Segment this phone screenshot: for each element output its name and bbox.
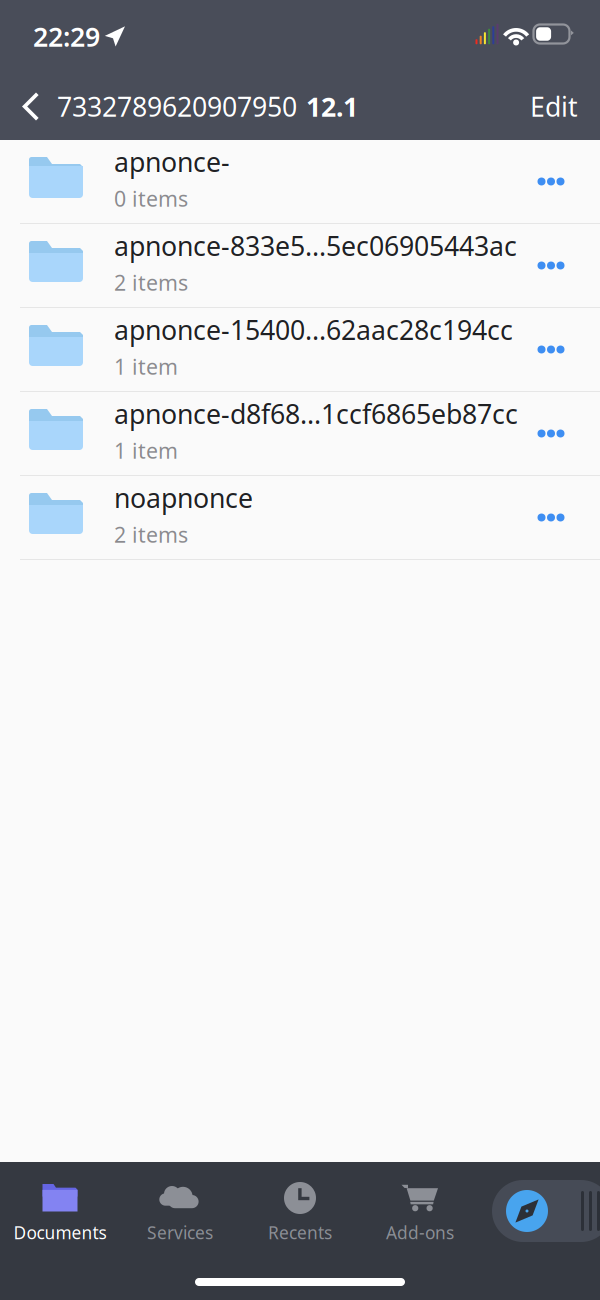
button[interactable]: noapnonce <box>0 476 600 559</box>
button[interactable]: Recents <box>240 1162 360 1300</box>
staticText: Documents <box>13 1221 106 1244</box>
staticText: apnonce-15400...62aac28c194cc <box>114 312 513 347</box>
button[interactable]: apnonce-d8f68...1ccf6865eb87cc <box>0 392 600 475</box>
button[interactable]: apnonce- <box>0 140 600 223</box>
button[interactable]: apnonce-833e5...5ec06905443ac <box>0 224 600 307</box>
staticText: apnonce- <box>114 144 230 179</box>
staticText: Recents <box>268 1221 332 1244</box>
button[interactable]: More options for apnonce-833e5...5ec0690… <box>520 224 600 307</box>
staticText: 2 items <box>114 268 188 297</box>
staticText: 22:29 <box>33 19 100 54</box>
button[interactable]: Documents <box>0 1162 120 1300</box>
staticText: apnonce-833e5...5ec06905443ac <box>114 228 517 263</box>
button[interactable]: Edit <box>530 77 600 136</box>
button[interactable]: More options for apnonce- <box>520 140 600 223</box>
staticText: 1 item <box>114 352 178 381</box>
button[interactable]: Services <box>120 1162 240 1300</box>
staticText: 12.1 <box>306 89 358 124</box>
staticText: 0 items <box>114 184 188 213</box>
button[interactable]: 7332789620907950 <box>0 77 358 136</box>
staticText: 2 items <box>114 520 188 549</box>
staticText: 1 item <box>114 436 178 465</box>
button[interactable]: apnonce-15400...62aac28c194cc <box>0 308 600 391</box>
button[interactable]: More options for apnonce-d8f68...1ccf686… <box>520 392 600 475</box>
staticText: noapnonce <box>114 480 253 515</box>
button[interactable]: More options for apnonce-15400...62aac28… <box>520 308 600 391</box>
button[interactable]: Add-ons <box>360 1162 480 1300</box>
staticText: Services <box>147 1221 213 1244</box>
button[interactable]: Open Safari in Slide Over <box>492 1180 600 1242</box>
staticText: apnonce-d8f68...1ccf6865eb87cc <box>114 396 518 431</box>
staticText: Edit <box>530 89 578 124</box>
staticText: 7332789620907950 <box>57 89 297 124</box>
staticText: Add-ons <box>386 1221 454 1244</box>
button[interactable]: More options for noapnonce <box>520 476 600 559</box>
